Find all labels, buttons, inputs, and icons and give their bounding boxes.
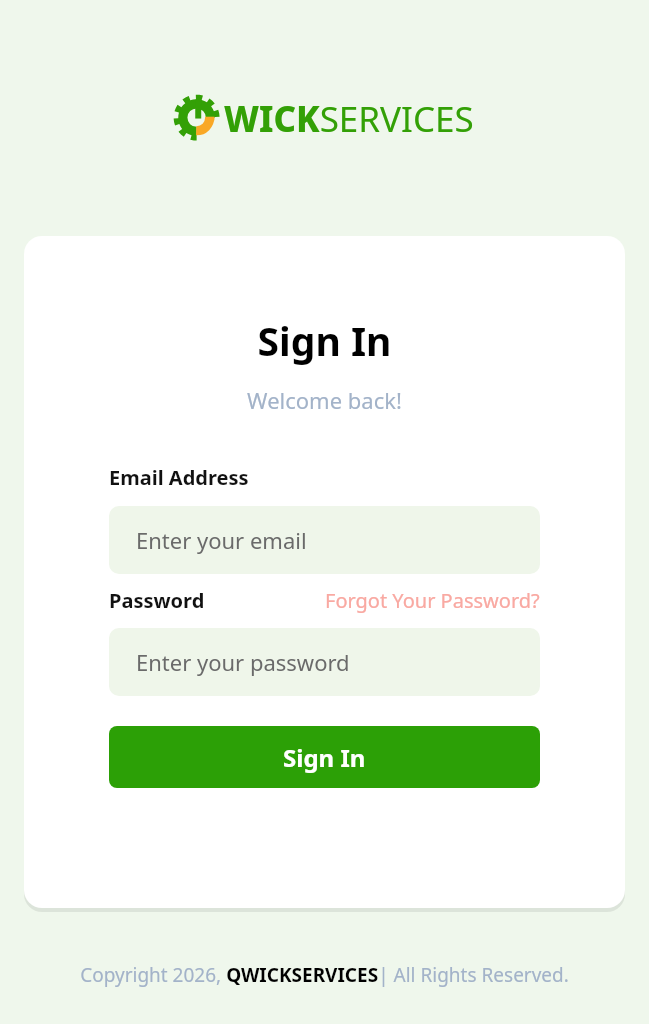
staticText: WICKSERVICES bbox=[224, 95, 474, 143]
staticText: Password bbox=[109, 587, 205, 614]
button[interactable]: QwickServices logo bbox=[0, 95, 649, 143]
staticText: Welcome back! bbox=[109, 385, 540, 415]
staticText: Enter your email bbox=[136, 525, 307, 555]
staticText: Enter your password bbox=[136, 647, 350, 677]
staticText: Sign In bbox=[109, 314, 540, 367]
staticText: Sign In bbox=[283, 741, 366, 774]
other: QwickServices logo bbox=[175, 96, 221, 142]
button[interactable]: Enter your email bbox=[109, 506, 540, 574]
button[interactable]: Forgot Your Password? bbox=[325, 587, 540, 614]
staticText: Forgot Your Password? bbox=[325, 587, 540, 614]
staticText: Email Address bbox=[109, 464, 249, 491]
staticText: Copyright 2026, QWICKSERVICES| All Right… bbox=[0, 962, 649, 988]
button[interactable]: Sign In bbox=[109, 726, 540, 788]
button[interactable]: Enter your password bbox=[109, 628, 540, 696]
